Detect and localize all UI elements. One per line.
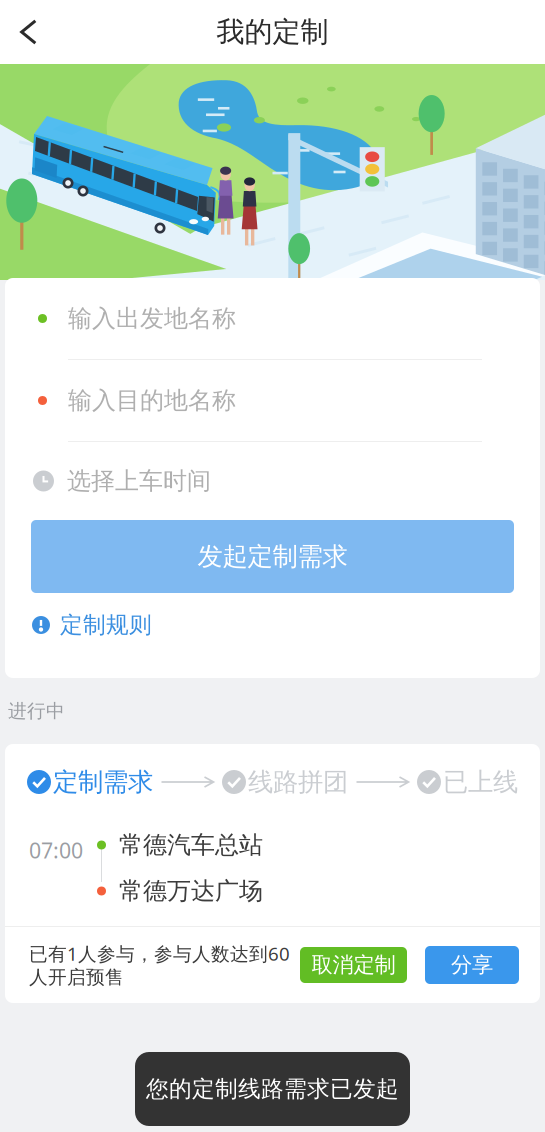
button[interactable]: 输入出发地名称	[5, 278, 540, 359]
button[interactable]: 分享	[425, 946, 519, 984]
button[interactable]: 输入目的地名称	[5, 360, 540, 441]
staticText: 已有1人参与，参与人数达到60人开启预售	[29, 941, 290, 989]
staticText: 线路拼团	[248, 766, 348, 797]
button[interactable]: 选择上车时间	[5, 442, 540, 520]
staticText: 发起定制需求	[197, 541, 347, 572]
staticText: 定制需求	[53, 766, 153, 797]
button[interactable]: 取消定制	[300, 947, 407, 983]
staticText: 分享	[451, 952, 493, 978]
staticText: 取消定制	[311, 952, 395, 978]
staticText: 选择上车时间	[67, 466, 211, 496]
staticText: 07:00	[29, 836, 83, 864]
button[interactable]: Back	[0, 0, 62, 64]
staticText: 输入出发地名称	[68, 304, 236, 333]
button[interactable]: 定制规则	[5, 593, 152, 657]
button[interactable]: 发起定制需求	[31, 520, 514, 593]
staticText: 输入目的地名称	[68, 386, 236, 415]
staticText: 常德汽车总站	[119, 830, 263, 860]
staticText: 定制规则	[60, 611, 152, 639]
staticText: 进行中	[8, 699, 65, 722]
staticText: 已上线	[443, 766, 518, 797]
staticText: 常德万达广场	[119, 876, 263, 906]
staticText: 我的定制	[216, 15, 328, 49]
staticText: 您的定制线路需求已发起	[146, 1075, 399, 1103]
